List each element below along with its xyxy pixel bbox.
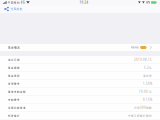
button[interactable]: 管理费率 — [0, 80, 160, 88]
button[interactable]: 业绩比较基准 — [0, 104, 160, 112]
staticText: 中国移动 4G — [8, 1, 25, 4]
staticText: 基金规模 — [8, 66, 20, 69]
staticText: 0.15% — [143, 98, 152, 102]
staticText: 基金概况 — [8, 46, 20, 49]
staticText: 1.50% — [143, 82, 152, 86]
button[interactable]: 托管银行 — [0, 112, 160, 120]
staticText: 47% — [146, 1, 150, 4]
button[interactable]: 最低申购金额 — [0, 88, 160, 96]
button[interactable]: 成立日期 — [0, 56, 160, 64]
staticText: 业绩比较基准 — [8, 106, 26, 109]
staticText: 分享好友 — [11, 7, 23, 11]
button[interactable]: 申购费率 — [0, 96, 160, 104]
button[interactable]: 基金概况 — [0, 44, 160, 51]
staticText: 5.2亿 — [144, 66, 152, 70]
staticText: 混合型 — [143, 74, 152, 77]
button[interactable]: 基金类型 — [0, 72, 160, 80]
staticText: 管理费率 — [8, 82, 20, 85]
staticText: 风险等级 — [131, 46, 139, 49]
staticText: 中国工商银行股份 — [128, 114, 152, 117]
staticText: 成立日期 — [8, 58, 20, 61]
staticText: 托管银行 — [8, 114, 20, 117]
staticText: 最低申购金额 — [8, 90, 26, 93]
button[interactable]: 分享好友 — [4, 5, 23, 12]
staticText: 基金类型 — [8, 74, 20, 77]
staticText: 申购费率 — [8, 98, 20, 101]
button[interactable]: 基金规模 — [0, 64, 160, 72]
staticText: 10.00 元 — [139, 90, 152, 94]
staticText: 10:24 — [79, 1, 88, 4]
staticText: 沪深300指数 — [134, 106, 152, 110]
staticText: 2019-08-15 — [134, 58, 152, 62]
